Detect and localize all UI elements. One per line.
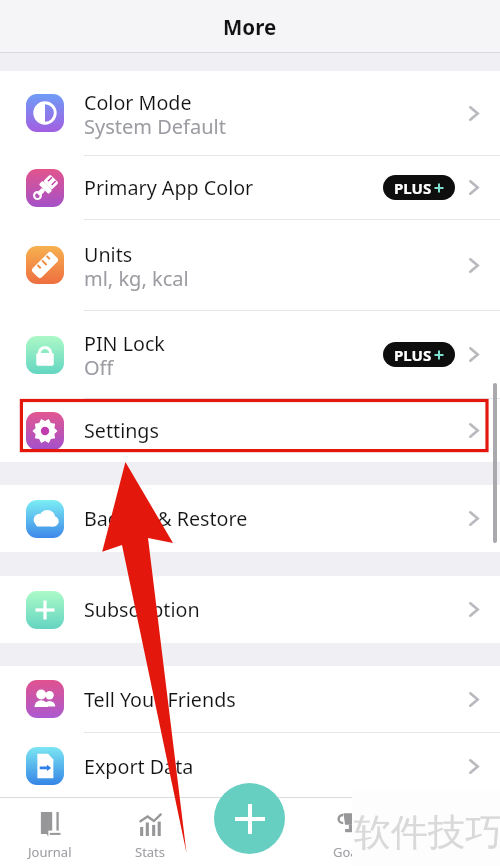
- staticText: Export Data: [84, 753, 194, 780]
- staticText: Tell Your Friends: [84, 686, 236, 713]
- button[interactable]: Goals: [300, 797, 400, 866]
- staticText: ml, kg, kcal: [84, 265, 189, 292]
- staticText: System Default: [84, 113, 226, 140]
- staticText: Stats: [135, 843, 166, 861]
- button[interactable]: Subscription: [0, 576, 500, 643]
- staticText: Color Mode: [84, 89, 192, 116]
- staticText: Subscription: [84, 596, 200, 623]
- button[interactable]: Tell Your Friends: [0, 666, 500, 732]
- staticText: Backup & Restore: [84, 505, 248, 532]
- staticText: PLUS: [394, 178, 432, 198]
- button[interactable]: Stats: [100, 797, 200, 866]
- staticText: PLUS: [394, 345, 432, 365]
- button[interactable]: Settings: [0, 399, 500, 462]
- button[interactable]: Units: [0, 220, 500, 310]
- button[interactable]: Export Data: [0, 733, 500, 799]
- staticText: Off: [84, 354, 114, 381]
- staticText: PIN Lock: [84, 330, 165, 357]
- button[interactable]: Color Mode: [0, 71, 500, 155]
- button[interactable]: Backup & Restore: [0, 485, 500, 552]
- button[interactable]: PIN Lock: [0, 311, 500, 398]
- button[interactable]: Primary App Color: [0, 156, 500, 219]
- staticText: More: [223, 13, 277, 41]
- staticText: 软件技巧: [354, 809, 500, 856]
- staticText: Goals: [333, 843, 368, 861]
- staticText: Journal: [28, 843, 72, 861]
- staticText: Primary App Color: [84, 174, 254, 201]
- button[interactable]: Add: [214, 783, 285, 854]
- staticText: Units: [84, 241, 133, 268]
- staticText: Settings: [84, 417, 159, 444]
- button[interactable]: Journal: [0, 797, 100, 866]
